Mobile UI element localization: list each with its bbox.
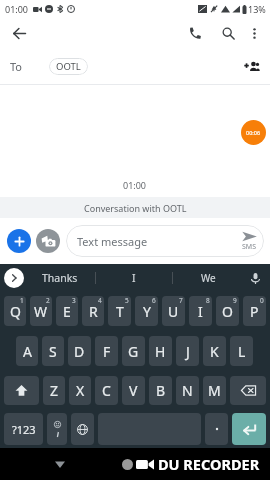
- staticText: Conversation with OOTL: [84, 202, 187, 214]
- staticText: W: [34, 302, 48, 321]
- staticText: 3: [72, 296, 76, 305]
- button[interactable]: Call: [181, 18, 209, 48]
- staticText: S: [49, 342, 57, 361]
- staticText: B: [156, 381, 166, 400]
- staticText: I: [198, 302, 203, 321]
- staticText: DU RECORDER: [158, 454, 260, 474]
- button[interactable]: H: [149, 336, 172, 366]
- staticText: U: [168, 302, 179, 321]
- button[interactable]: B: [149, 376, 172, 405]
- button[interactable]: D: [68, 336, 91, 366]
- button[interactable]: L: [230, 336, 253, 366]
- button[interactable]: W: [30, 296, 52, 326]
- button[interactable]: OOTL: [49, 58, 88, 75]
- button[interactable]: S: [42, 336, 64, 366]
- staticText: 9: [233, 296, 237, 305]
- staticText: C: [102, 381, 111, 400]
- button[interactable]: P: [243, 296, 266, 326]
- button[interactable]: Text message: [66, 225, 264, 257]
- button[interactable]: Voice input: [244, 268, 266, 288]
- button[interactable]: Enter: [232, 413, 266, 445]
- staticText: We: [201, 271, 216, 285]
- button[interactable]: I: [96, 264, 172, 291]
- staticText: R: [89, 302, 98, 321]
- button[interactable]: E: [56, 296, 78, 326]
- staticText: Z: [50, 381, 59, 400]
- button[interactable]: Hide keyboard: [49, 453, 71, 475]
- staticText: 5: [125, 296, 129, 305]
- staticText: L: [238, 342, 246, 361]
- staticText: 8: [206, 296, 210, 305]
- staticText: Q: [10, 302, 21, 321]
- button[interactable]: Emoji: [47, 413, 67, 445]
- button[interactable]: F: [95, 336, 118, 366]
- staticText: 6: [152, 296, 156, 305]
- button[interactable]: We: [173, 264, 244, 291]
- button[interactable]: K: [203, 336, 226, 366]
- staticText: 01:00: [5, 3, 29, 15]
- button[interactable]: O: [216, 296, 239, 326]
- button[interactable]: Add people: [238, 53, 264, 79]
- staticText: OOTL: [56, 60, 81, 73]
- staticText: N: [182, 381, 193, 400]
- button[interactable]: Back: [0, 18, 38, 48]
- button[interactable]: N: [176, 376, 199, 405]
- button[interactable]: Symbols: [4, 413, 43, 445]
- staticText: D: [74, 342, 85, 361]
- button[interactable]: U: [162, 296, 185, 326]
- button[interactable]: J: [176, 336, 199, 366]
- button[interactable]: Thanks: [24, 264, 95, 291]
- staticText: I: [132, 271, 136, 285]
- button[interactable]: G: [122, 336, 145, 366]
- staticText: 1: [20, 296, 24, 305]
- staticText: X: [76, 381, 85, 400]
- staticText: 01:00: [123, 179, 147, 191]
- staticText: SMS: [242, 242, 257, 252]
- staticText: ?123: [12, 422, 36, 437]
- staticText: Text message: [77, 234, 148, 249]
- staticText: V: [129, 381, 138, 400]
- staticText: A: [23, 342, 32, 361]
- staticText: Thanks: [42, 271, 78, 285]
- staticText: E: [63, 302, 71, 321]
- button[interactable]: C: [95, 376, 118, 405]
- button[interactable]: Search: [214, 18, 242, 48]
- staticText: 2: [46, 296, 50, 305]
- staticText: G: [128, 342, 139, 361]
- button[interactable]: Language: [71, 413, 94, 445]
- button[interactable]: A: [16, 336, 38, 366]
- button[interactable]: More options: [242, 18, 266, 48]
- button[interactable]: I: [189, 296, 212, 326]
- staticText: 13%: [248, 3, 266, 15]
- button[interactable]: Camera: [36, 229, 60, 253]
- staticText: H: [155, 342, 166, 361]
- staticText: 00:06: [246, 129, 261, 136]
- staticText: 7: [179, 296, 183, 305]
- button[interactable]: T: [108, 296, 131, 326]
- staticText: Y: [143, 302, 151, 321]
- staticText: M: [208, 381, 221, 400]
- staticText: 4: [98, 296, 102, 305]
- staticText: 0: [260, 296, 264, 305]
- button[interactable]: Shift: [4, 376, 39, 405]
- button[interactable]: V: [122, 376, 145, 405]
- button[interactable]: 00:06: [241, 120, 266, 145]
- button[interactable]: Expand toolbar: [4, 268, 24, 288]
- staticText: O: [222, 302, 233, 321]
- button[interactable]: Y: [135, 296, 158, 326]
- button[interactable]: Period: [205, 413, 228, 445]
- staticText: J: [186, 342, 190, 361]
- button[interactable]: Q: [4, 296, 26, 326]
- button[interactable]: Backspace: [230, 376, 266, 405]
- button[interactable]: M: [203, 376, 226, 405]
- button[interactable]: Add attachment: [7, 229, 31, 253]
- staticText: T: [116, 302, 124, 321]
- staticText: P: [250, 302, 259, 321]
- staticText: To: [10, 59, 23, 74]
- staticText: F: [103, 342, 111, 361]
- button[interactable]: X: [69, 376, 91, 405]
- button[interactable]: Z: [43, 376, 65, 405]
- button[interactable]: R: [82, 296, 104, 326]
- staticText: K: [210, 342, 219, 361]
